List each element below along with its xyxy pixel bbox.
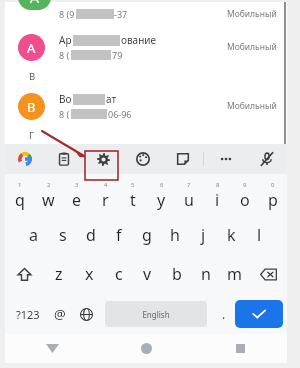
staticText: t bbox=[130, 189, 136, 211]
button[interactable]: Voice input off bbox=[247, 144, 287, 174]
staticText: 8 (9 bbox=[59, 8, 75, 20]
staticText: Ар bbox=[59, 33, 72, 47]
button[interactable]: 3 bbox=[63, 176, 91, 215]
button[interactable]: A bbox=[5, 27, 287, 67]
button[interactable]: 5 bbox=[119, 176, 147, 215]
staticText: 2 bbox=[47, 181, 51, 189]
staticText: A bbox=[30, 0, 39, 7]
staticText: e bbox=[72, 189, 82, 211]
button[interactable]: 0 bbox=[259, 176, 287, 215]
staticText: g bbox=[142, 224, 152, 246]
staticText: Мобильный bbox=[227, 41, 277, 53]
staticText: B bbox=[27, 98, 36, 116]
button[interactable]: f bbox=[105, 215, 133, 254]
staticText: -37 bbox=[114, 8, 128, 20]
staticText: @ bbox=[54, 305, 66, 323]
button[interactable]: . bbox=[213, 294, 235, 334]
staticText: w bbox=[42, 189, 55, 211]
button[interactable]: A bbox=[5, 2, 287, 27]
staticText: l bbox=[257, 224, 262, 246]
staticText: q bbox=[15, 189, 25, 211]
staticText: Мобильный bbox=[227, 100, 277, 112]
staticText: ?123 bbox=[16, 307, 40, 322]
button[interactable]: ?123 bbox=[9, 294, 47, 334]
button[interactable]: English bbox=[105, 301, 207, 327]
staticText: В bbox=[29, 70, 36, 83]
staticText: 9 bbox=[243, 181, 247, 189]
button[interactable]: d bbox=[77, 215, 105, 254]
button[interactable]: Shift bbox=[5, 254, 44, 294]
staticText: ат bbox=[106, 92, 117, 106]
staticText: y bbox=[157, 189, 166, 211]
staticText: f bbox=[116, 224, 122, 246]
staticText: Г bbox=[29, 129, 34, 142]
staticText: 3 bbox=[75, 181, 79, 189]
button[interactable]: Enter bbox=[235, 300, 283, 328]
staticText: 79 bbox=[112, 49, 123, 61]
button[interactable]: 6 bbox=[147, 176, 175, 215]
button[interactable]: At sign bbox=[47, 294, 73, 334]
button[interactable]: b bbox=[162, 254, 191, 294]
button[interactable]: a bbox=[19, 215, 48, 254]
button[interactable]: k bbox=[217, 215, 245, 254]
staticText: h bbox=[170, 224, 180, 246]
staticText: s bbox=[59, 224, 67, 246]
button[interactable]: 8 bbox=[203, 176, 231, 215]
button[interactable]: Stickers bbox=[163, 144, 203, 174]
staticText: u bbox=[184, 189, 194, 211]
staticText: ование bbox=[121, 33, 156, 47]
button[interactable]: n bbox=[191, 254, 220, 294]
staticText: k bbox=[227, 224, 236, 246]
staticText: p bbox=[268, 189, 278, 211]
staticText: English bbox=[142, 309, 170, 320]
button[interactable]: j bbox=[189, 215, 217, 254]
staticText: 8 bbox=[216, 181, 220, 189]
button[interactable]: z bbox=[44, 254, 74, 294]
button[interactable]: c bbox=[104, 254, 133, 294]
button[interactable]: Recent apps bbox=[193, 334, 287, 363]
button[interactable]: Hide keyboard bbox=[5, 334, 99, 363]
staticText: Во bbox=[59, 92, 72, 106]
staticText: . bbox=[222, 306, 226, 322]
staticText: m bbox=[227, 263, 242, 285]
staticText: A bbox=[27, 39, 36, 57]
button[interactable]: 2 bbox=[34, 176, 63, 215]
button[interactable]: 1 bbox=[5, 176, 34, 215]
button[interactable]: B bbox=[5, 86, 287, 126]
button[interactable]: 4 bbox=[91, 176, 119, 215]
staticText: 6 bbox=[160, 181, 164, 189]
staticText: Мобильный bbox=[227, 8, 277, 20]
button[interactable]: Google search bbox=[5, 144, 45, 174]
button[interactable]: Clipboard bbox=[45, 144, 83, 174]
button[interactable]: Change language bbox=[73, 294, 99, 334]
button[interactable]: Themes bbox=[123, 144, 163, 174]
button[interactable]: Settings bbox=[89, 146, 117, 173]
staticText: n bbox=[201, 263, 211, 285]
staticText: 8 ( bbox=[59, 49, 70, 61]
staticText: j bbox=[201, 224, 206, 246]
button[interactable]: v bbox=[133, 254, 162, 294]
staticText: o bbox=[240, 189, 250, 211]
staticText: 1 bbox=[18, 181, 22, 189]
button[interactable]: m bbox=[220, 254, 249, 294]
staticText: 06-96 bbox=[108, 108, 132, 120]
staticText: 0 bbox=[271, 181, 275, 189]
button[interactable]: Backspace bbox=[249, 254, 287, 294]
staticText: 5 bbox=[131, 181, 135, 189]
button[interactable]: h bbox=[161, 215, 189, 254]
button[interactable]: l bbox=[245, 215, 273, 254]
button[interactable]: s bbox=[48, 215, 77, 254]
button[interactable]: More options bbox=[204, 144, 247, 174]
button[interactable]: g bbox=[133, 215, 161, 254]
button[interactable]: 9 bbox=[231, 176, 259, 215]
staticText: b bbox=[172, 263, 182, 285]
staticText: c bbox=[115, 263, 123, 285]
staticText: 7 bbox=[187, 181, 191, 189]
button[interactable]: x bbox=[74, 254, 104, 294]
staticText: z bbox=[55, 263, 63, 285]
staticText: 8 ( bbox=[59, 108, 70, 120]
button[interactable]: 7 bbox=[175, 176, 203, 215]
staticText: a bbox=[29, 224, 38, 246]
staticText: d bbox=[86, 224, 96, 246]
button[interactable]: Home bbox=[99, 334, 193, 363]
